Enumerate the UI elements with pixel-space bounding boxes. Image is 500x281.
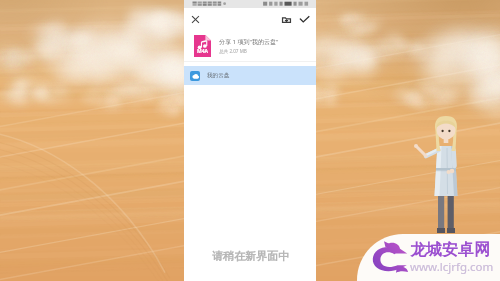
button[interactable]: New folder: [277, 8, 295, 31]
button[interactable]: Confirm: [295, 8, 313, 31]
staticText: 总共 2.07 MB: [219, 48, 247, 54]
button[interactable]: 我的云盘: [184, 66, 316, 85]
button[interactable]: Close: [187, 8, 204, 31]
staticText: www.lcjrfg.com: [410, 259, 494, 275]
staticText: 请稍在新界面中: [212, 249, 289, 263]
staticText: 我的云盘: [207, 72, 230, 79]
staticText: M4A: [197, 48, 209, 55]
staticText: 龙城安卓网: [410, 240, 490, 260]
staticText: 分享 1 项到"我的云盘": [219, 38, 279, 46]
